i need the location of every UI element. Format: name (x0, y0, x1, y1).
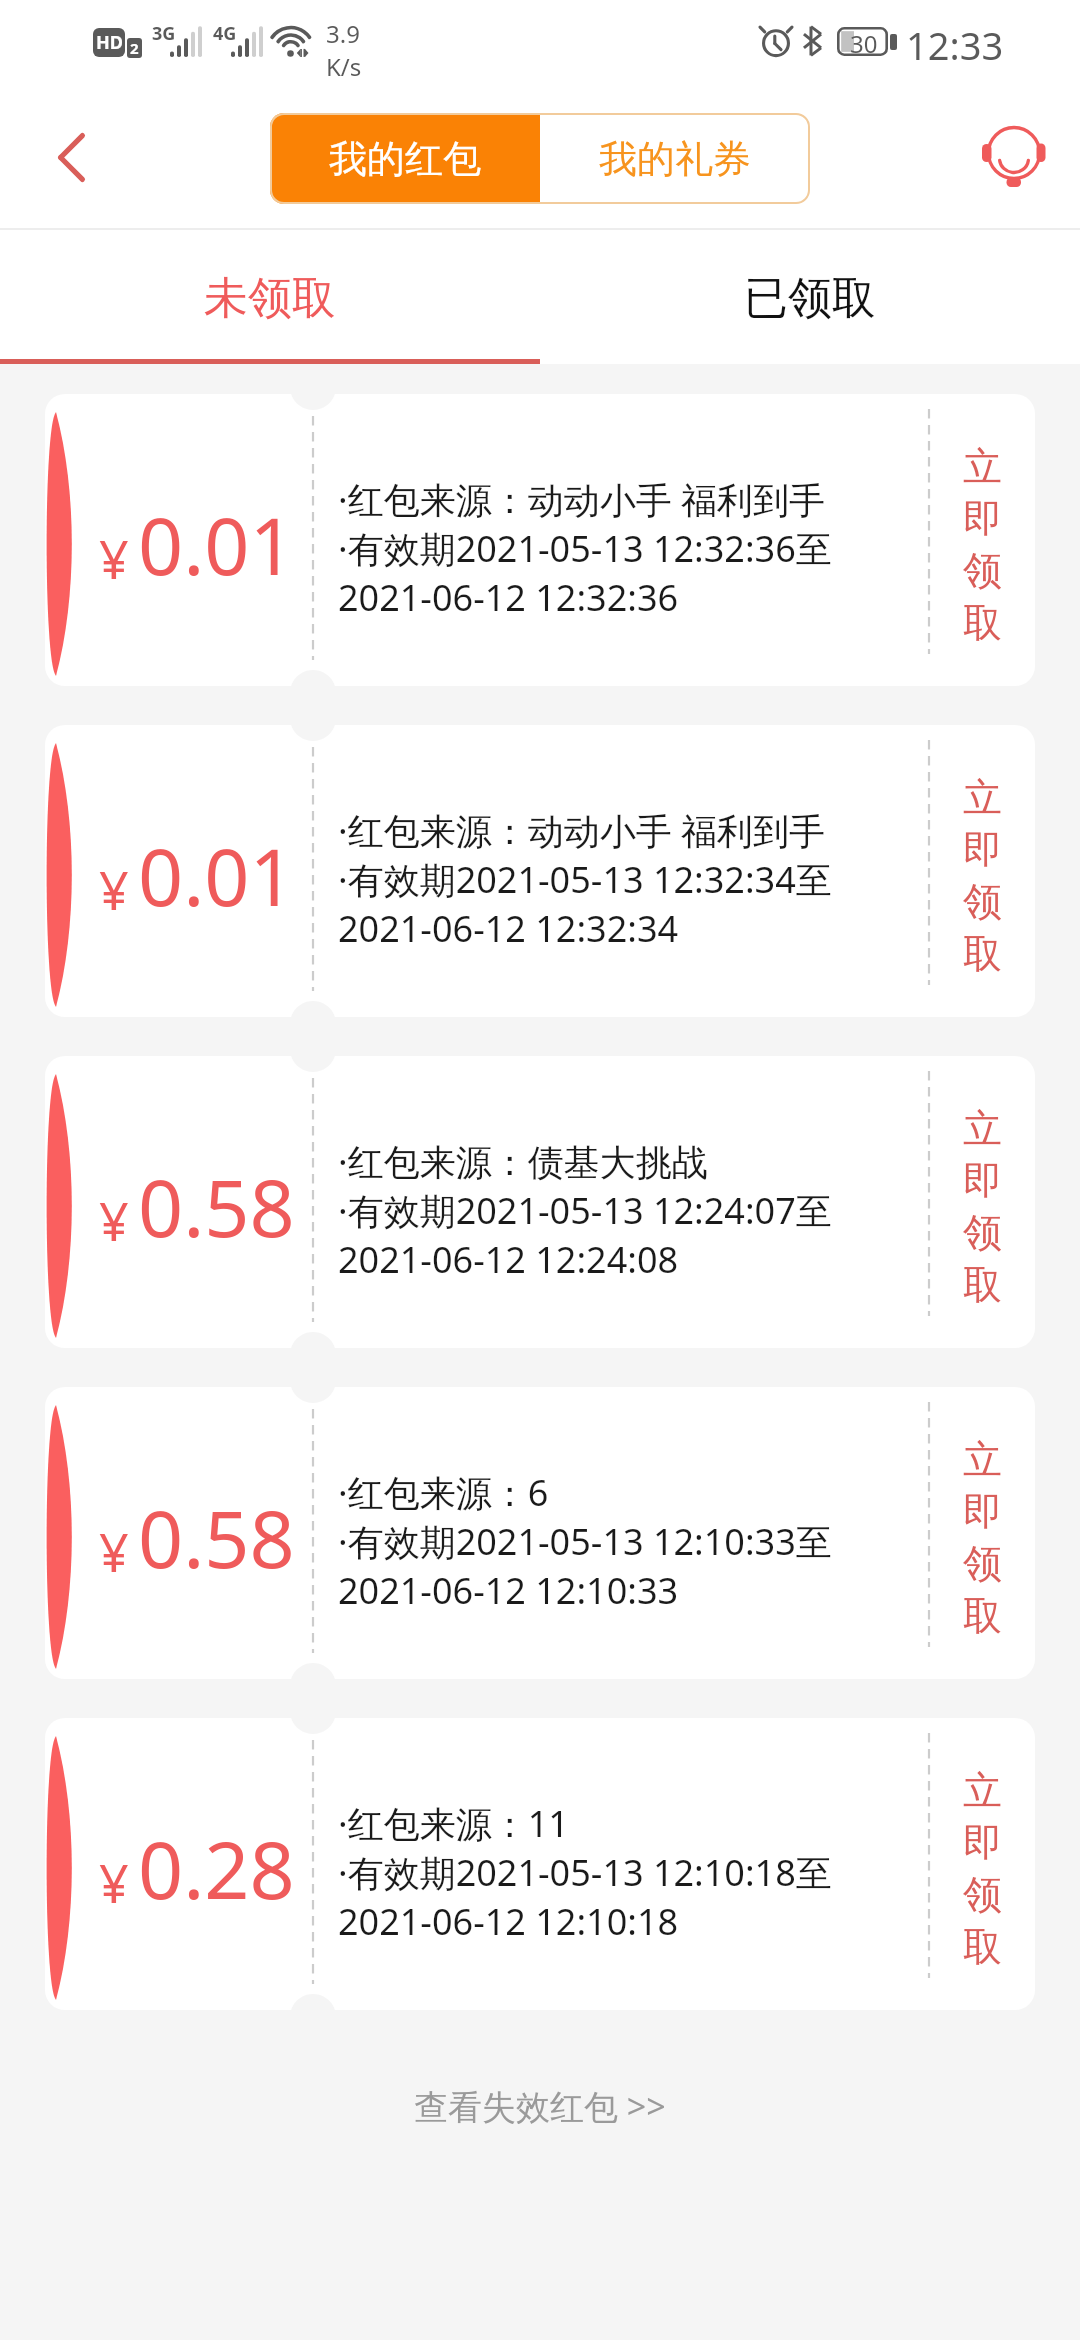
staticText: HD (96, 30, 123, 55)
button[interactable]: 立 即 领 取 (929, 1056, 1035, 1348)
staticText: 我的礼券 (599, 135, 751, 183)
staticText: ·有效期2021-05-13 12:24:07至 (338, 1186, 832, 1235)
staticText: 立 即 领 取 (963, 442, 1002, 647)
staticText: ·有效期2021-05-13 12:32:34至 (338, 855, 832, 904)
staticText: 4G (213, 21, 237, 46)
staticText: ¥ (99, 1516, 129, 1587)
staticText: 已领取 (744, 271, 876, 326)
staticText: 立 即 领 取 (963, 773, 1002, 978)
staticText: ¥ (99, 523, 129, 594)
staticText: 未领取 (204, 271, 336, 326)
staticText: ¥ (99, 1847, 129, 1918)
staticText: 0.58 (138, 1484, 295, 1592)
button[interactable]: ¥ (45, 394, 1035, 686)
button[interactable]: ¥ (45, 1718, 1035, 2010)
staticText: ·红包来源：债基大挑战 (338, 1137, 708, 1186)
staticText: 2021-06-12 12:24:08 (338, 1235, 679, 1284)
staticText: 立 即 领 取 (963, 1104, 1002, 1309)
staticText: 0.58 (138, 1153, 295, 1261)
staticText: K/s (326, 50, 362, 83)
staticText: ·有效期2021-05-13 12:32:36至 (338, 524, 832, 573)
staticText: 2021-06-12 12:32:34 (338, 904, 679, 953)
staticText: ·红包来源：6 (338, 1468, 549, 1517)
button[interactable]: ¥ (45, 1056, 1035, 1348)
staticText: 30 (850, 27, 878, 56)
staticText: ·有效期2021-05-13 12:10:33至 (338, 1517, 832, 1566)
staticText: 0.01 (138, 822, 295, 930)
button[interactable]: 我的礼券 (540, 113, 810, 204)
staticText: ·红包来源：动动小手 福利到手 (338, 806, 826, 855)
button[interactable]: 查看失效红包 >> (398, 2073, 682, 2139)
staticText: 0.01 (138, 491, 295, 599)
button[interactable]: ¥ (45, 725, 1035, 1017)
staticText: 2 (130, 38, 139, 58)
staticText: 3.9 (326, 17, 360, 50)
staticText: 12:33 (906, 19, 1004, 71)
button[interactable]: ¥ (45, 1387, 1035, 1679)
button[interactable]: 我的红包 (270, 113, 540, 204)
button[interactable]: 立 即 领 取 (929, 725, 1035, 1017)
button[interactable]: 已领取 (540, 230, 1080, 359)
staticText: ¥ (99, 854, 129, 925)
button[interactable]: 立 即 领 取 (929, 394, 1035, 686)
staticText: 立 即 领 取 (963, 1766, 1002, 1971)
staticText: 0.28 (138, 1815, 295, 1923)
staticText: 3G (152, 21, 176, 46)
staticText: 2021-06-12 12:10:33 (338, 1566, 679, 1615)
staticText: 2021-06-12 12:32:36 (338, 573, 679, 622)
staticText: ·红包来源：动动小手 福利到手 (338, 475, 826, 524)
button[interactable]: 立 即 领 取 (929, 1387, 1035, 1679)
button[interactable]: 立 即 领 取 (929, 1718, 1035, 2010)
staticText: 查看失效红包 >> (414, 2083, 666, 2129)
button[interactable]: 客服 (950, 92, 1080, 228)
button[interactable]: 返回 (0, 92, 120, 228)
staticText: 立 即 领 取 (963, 1435, 1002, 1640)
staticText: 2021-06-12 12:10:18 (338, 1897, 679, 1946)
staticText: ¥ (99, 1185, 129, 1256)
staticText: 我的红包 (329, 135, 481, 183)
staticText: ·有效期2021-05-13 12:10:18至 (338, 1848, 832, 1897)
button[interactable]: 未领取 (0, 230, 540, 359)
staticText: ·红包来源：11 (338, 1799, 569, 1848)
